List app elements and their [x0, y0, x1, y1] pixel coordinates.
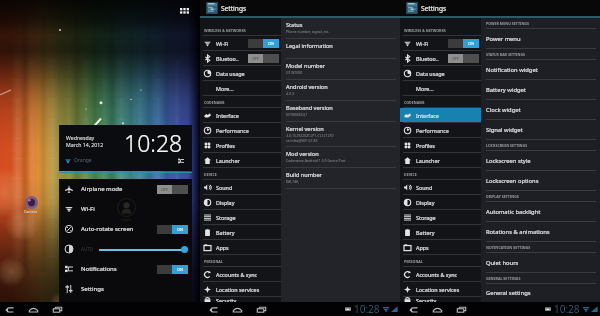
button[interactable]: Home — [231, 303, 243, 315]
staticText: IML74K — [286, 179, 299, 184]
button[interactable]: Accounts & sync — [400, 267, 481, 281]
button[interactable]: Bluetoo.. — [400, 51, 481, 65]
staticText: Model number — [286, 62, 325, 70]
button[interactable]: Mod version — [286, 147, 396, 167]
staticText: PERSONAL — [404, 259, 423, 264]
button[interactable]: Wi-Fi — [59, 199, 192, 219]
button[interactable]: Recent apps — [255, 303, 267, 315]
button[interactable]: Status — [286, 18, 396, 38]
button[interactable]: Settings — [200, 0, 400, 16]
staticText: Clock widget — [486, 106, 521, 114]
button[interactable]: Location services — [200, 282, 281, 296]
button[interactable]: Home — [27, 303, 39, 315]
button[interactable]: Kernel version — [286, 122, 396, 146]
button[interactable]: Back — [3, 303, 15, 315]
button[interactable]: Interface — [200, 108, 281, 122]
button[interactable]: Launcher — [200, 153, 281, 167]
staticText: Codename Android 1.0.5 Gnote Port — [286, 158, 346, 163]
button[interactable]: Sound — [400, 180, 481, 194]
button[interactable]: Signal widget — [486, 120, 596, 139]
staticText: Phone number, signal, etc. — [286, 29, 330, 34]
button[interactable]: Location services — [400, 282, 481, 296]
button[interactable]: Rotations & animations — [486, 222, 596, 241]
button[interactable]: Recent apps — [51, 303, 63, 315]
button[interactable]: Display — [400, 195, 481, 209]
button[interactable]: Battery — [200, 225, 281, 239]
button[interactable]: Automatic backlight — [486, 202, 596, 221]
button[interactable]: Display — [200, 195, 281, 209]
button[interactable]: Settings — [59, 279, 192, 299]
button[interactable]: Legal information — [286, 39, 396, 58]
button[interactable]: More... — [400, 81, 481, 95]
button[interactable]: Data usage — [200, 66, 281, 80]
button[interactable]: Apps — [400, 240, 481, 254]
button[interactable]: Home — [431, 303, 443, 315]
button[interactable]: Back — [407, 303, 419, 315]
staticText: Launcher — [416, 157, 440, 164]
button[interactable]: Android version — [286, 80, 396, 100]
staticText: Notifications — [81, 265, 117, 273]
staticText: Baseband version — [286, 104, 333, 112]
staticText: 10:28 — [354, 302, 380, 316]
button[interactable]: Settings — [400, 0, 600, 16]
button[interactable]: Apps — [177, 3, 191, 17]
button[interactable]: Sound — [200, 180, 281, 194]
button[interactable]: Battery — [400, 225, 481, 239]
button[interactable]: General settings — [486, 284, 596, 302]
staticText: Battery — [416, 229, 435, 236]
button[interactable]: Build number — [286, 168, 396, 188]
staticText: Build number — [286, 171, 322, 179]
button[interactable]: Apps — [200, 240, 281, 254]
staticText: Rotations & animations — [486, 228, 550, 236]
staticText: GENERAL SETTINGS — [486, 276, 521, 281]
button[interactable]: Power menu — [486, 29, 596, 48]
button[interactable]: User profile — [117, 198, 136, 222]
staticText: Airplane mode — [81, 185, 123, 193]
button[interactable]: Airplane mode — [59, 179, 192, 199]
button[interactable]: Interface — [400, 108, 481, 122]
staticText: Settings — [221, 4, 247, 13]
staticText: WIRELESS & NETWORKS — [404, 28, 446, 33]
staticText: DEVICE — [204, 172, 217, 177]
button[interactable]: Bluetoo.. — [200, 51, 281, 65]
button[interactable]: Wi-Fi — [400, 36, 481, 50]
staticText: ON — [177, 227, 184, 232]
button[interactable]: Battery widget — [486, 80, 596, 99]
staticText: ON — [268, 41, 275, 46]
staticText: Profiles — [216, 142, 235, 149]
button[interactable]: Recent apps — [455, 303, 467, 315]
button[interactable]: Auto-rotate screen — [59, 219, 192, 239]
button[interactable]: Wednesday — [59, 125, 192, 171]
button[interactable]: Profiles — [400, 138, 481, 152]
button[interactable]: Performance — [400, 123, 481, 137]
button[interactable]: Model number — [286, 59, 396, 79]
staticText: Battery widget — [486, 86, 526, 94]
button[interactable]: Launcher — [400, 153, 481, 167]
button[interactable]: More... — [200, 81, 281, 95]
button[interactable]: Data usage — [400, 66, 481, 80]
button[interactable]: Storage — [400, 210, 481, 224]
button[interactable]: Profiles — [200, 138, 281, 152]
button[interactable]: Storage — [200, 210, 281, 224]
button[interactable]: Accounts & sync — [200, 267, 281, 281]
button[interactable]: Clock widget — [486, 100, 596, 119]
button[interactable]: Wi-Fi — [200, 36, 281, 50]
button[interactable]: Notification widget — [486, 60, 596, 79]
button[interactable]: Quiet hours — [486, 253, 596, 272]
button[interactable]: Lockscreen style — [486, 151, 596, 170]
button[interactable]: Security — [200, 297, 281, 302]
staticText: 10:28 — [124, 127, 183, 158]
staticText: STATUS BAR SETTINGS — [486, 52, 526, 57]
button[interactable]: Performance — [200, 123, 281, 137]
button[interactable]: AUTO — [59, 239, 192, 259]
staticText: Wednesday — [66, 134, 95, 141]
staticText: OFF — [161, 187, 169, 192]
button[interactable]: Camera — [24, 196, 38, 214]
button[interactable]: Security — [400, 297, 481, 302]
button[interactable]: Baseband version — [286, 101, 396, 121]
staticText: Accounts & sync — [416, 271, 458, 278]
button[interactable]: Notifications — [59, 259, 192, 279]
button[interactable]: Lockscreen options — [486, 171, 596, 190]
staticText: Interface — [416, 112, 439, 119]
button[interactable]: Back — [207, 303, 219, 315]
